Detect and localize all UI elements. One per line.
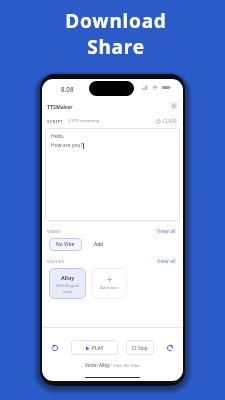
staticText: 3,979 remaining [68,118,100,124]
staticText: Hello, [51,133,65,140]
button[interactable]: Alloy [49,268,86,299]
staticText: Share [87,34,145,60]
button[interactable]: Refresh [166,344,174,352]
staticText: PLAY [92,345,104,351]
button[interactable]: Add [91,238,107,251]
staticText: Multilingual male [56,283,79,294]
staticText: Add [94,241,104,248]
staticText: Alloy [61,274,75,281]
staticText: SCRIPT [47,118,64,124]
staticText: VOICES [47,258,65,264]
button[interactable]: Theme [170,102,178,110]
button[interactable]: No Vibe [49,238,82,251]
staticText: How are you? [51,142,83,149]
staticText: Download [65,8,167,34]
staticText: Vibe: No Vibe [113,362,140,368]
button[interactable]: Add voice [91,268,127,299]
staticText: VIBES [47,228,61,234]
staticText: Add voice [100,285,119,291]
button[interactable]: View all [157,227,176,234]
button[interactable]: Undo [51,344,59,352]
staticText: No Vibe [56,241,75,248]
button[interactable]: Stop [126,340,154,355]
staticText: CLEAR [163,118,178,124]
button[interactable]: CLEAR [156,118,178,124]
staticText: Stop [138,345,148,351]
staticText: 8.08 [61,85,74,94]
staticText: View all [157,257,176,264]
button[interactable]: View all [157,257,176,264]
staticText: View all [157,227,176,234]
staticText: Voice: Alloy [85,362,110,368]
staticText: TTSMaker [47,103,73,110]
button[interactable]: PLAY [71,340,118,355]
